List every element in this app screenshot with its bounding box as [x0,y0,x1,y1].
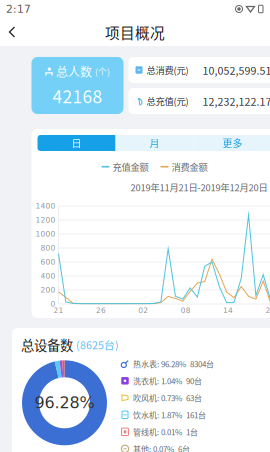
staticText: (8625台) [76,337,119,352]
staticText: 热水表: 96.28% 8304台 [133,358,214,370]
staticText: 1400 [35,202,55,210]
staticText: 1200 [35,216,55,224]
staticText: 42168 [52,83,102,108]
button[interactable]: Back [0,19,26,45]
staticText: 消费金额 [171,160,207,173]
staticText: 14 [223,306,233,315]
staticText: 更多 [222,136,242,150]
staticText: 总设备数 [21,335,73,354]
staticText: 吹风机: 0.73% 63台 [133,392,202,404]
staticText: 总人数 [56,63,92,80]
staticText: 21 [53,306,63,315]
staticText: 800 [40,244,55,252]
staticText: 总消费(元) [146,63,188,77]
staticText: 2019年11月21日-2019年12月20日 [130,180,267,194]
staticText: 10,052,599.51 [202,62,270,78]
button[interactable]: 总充值(元) [128,88,270,114]
staticText: 12,232,122.17 [202,93,270,109]
staticText: 洗衣机: 1.04% 90台 [133,375,202,387]
staticText: 0 [50,300,55,308]
staticText: 400 [40,272,55,280]
staticText: 2:17 [6,3,31,15]
staticText: 200 [40,286,55,294]
staticText: 26 [96,306,106,315]
staticText: 96.28% [34,393,94,412]
button[interactable]: 总人数 [31,57,123,114]
staticText: 08 [181,306,191,315]
button[interactable]: 日 [37,135,115,151]
button[interactable]: 月 [115,135,193,151]
button[interactable]: 总消费(元) [128,57,270,83]
staticText: 20 [265,306,270,315]
staticText: 02 [138,306,148,315]
staticText: 其他: 0.07% 6台 [133,443,190,452]
button[interactable]: 更多 [193,135,270,151]
staticText: 1000 [35,230,55,238]
staticText: 充值金额 [112,160,148,173]
staticText: 饮水机: 1.87% 161台 [133,409,206,421]
staticText: 日 [71,136,81,150]
staticText: 总充值(元) [146,94,188,108]
staticText: (个) [95,65,110,78]
staticText: 管线机: 0.01% 1台 [133,426,198,438]
staticText: 项目概况 [105,21,165,43]
staticText: 600 [40,258,55,266]
staticText: 月 [149,136,159,150]
